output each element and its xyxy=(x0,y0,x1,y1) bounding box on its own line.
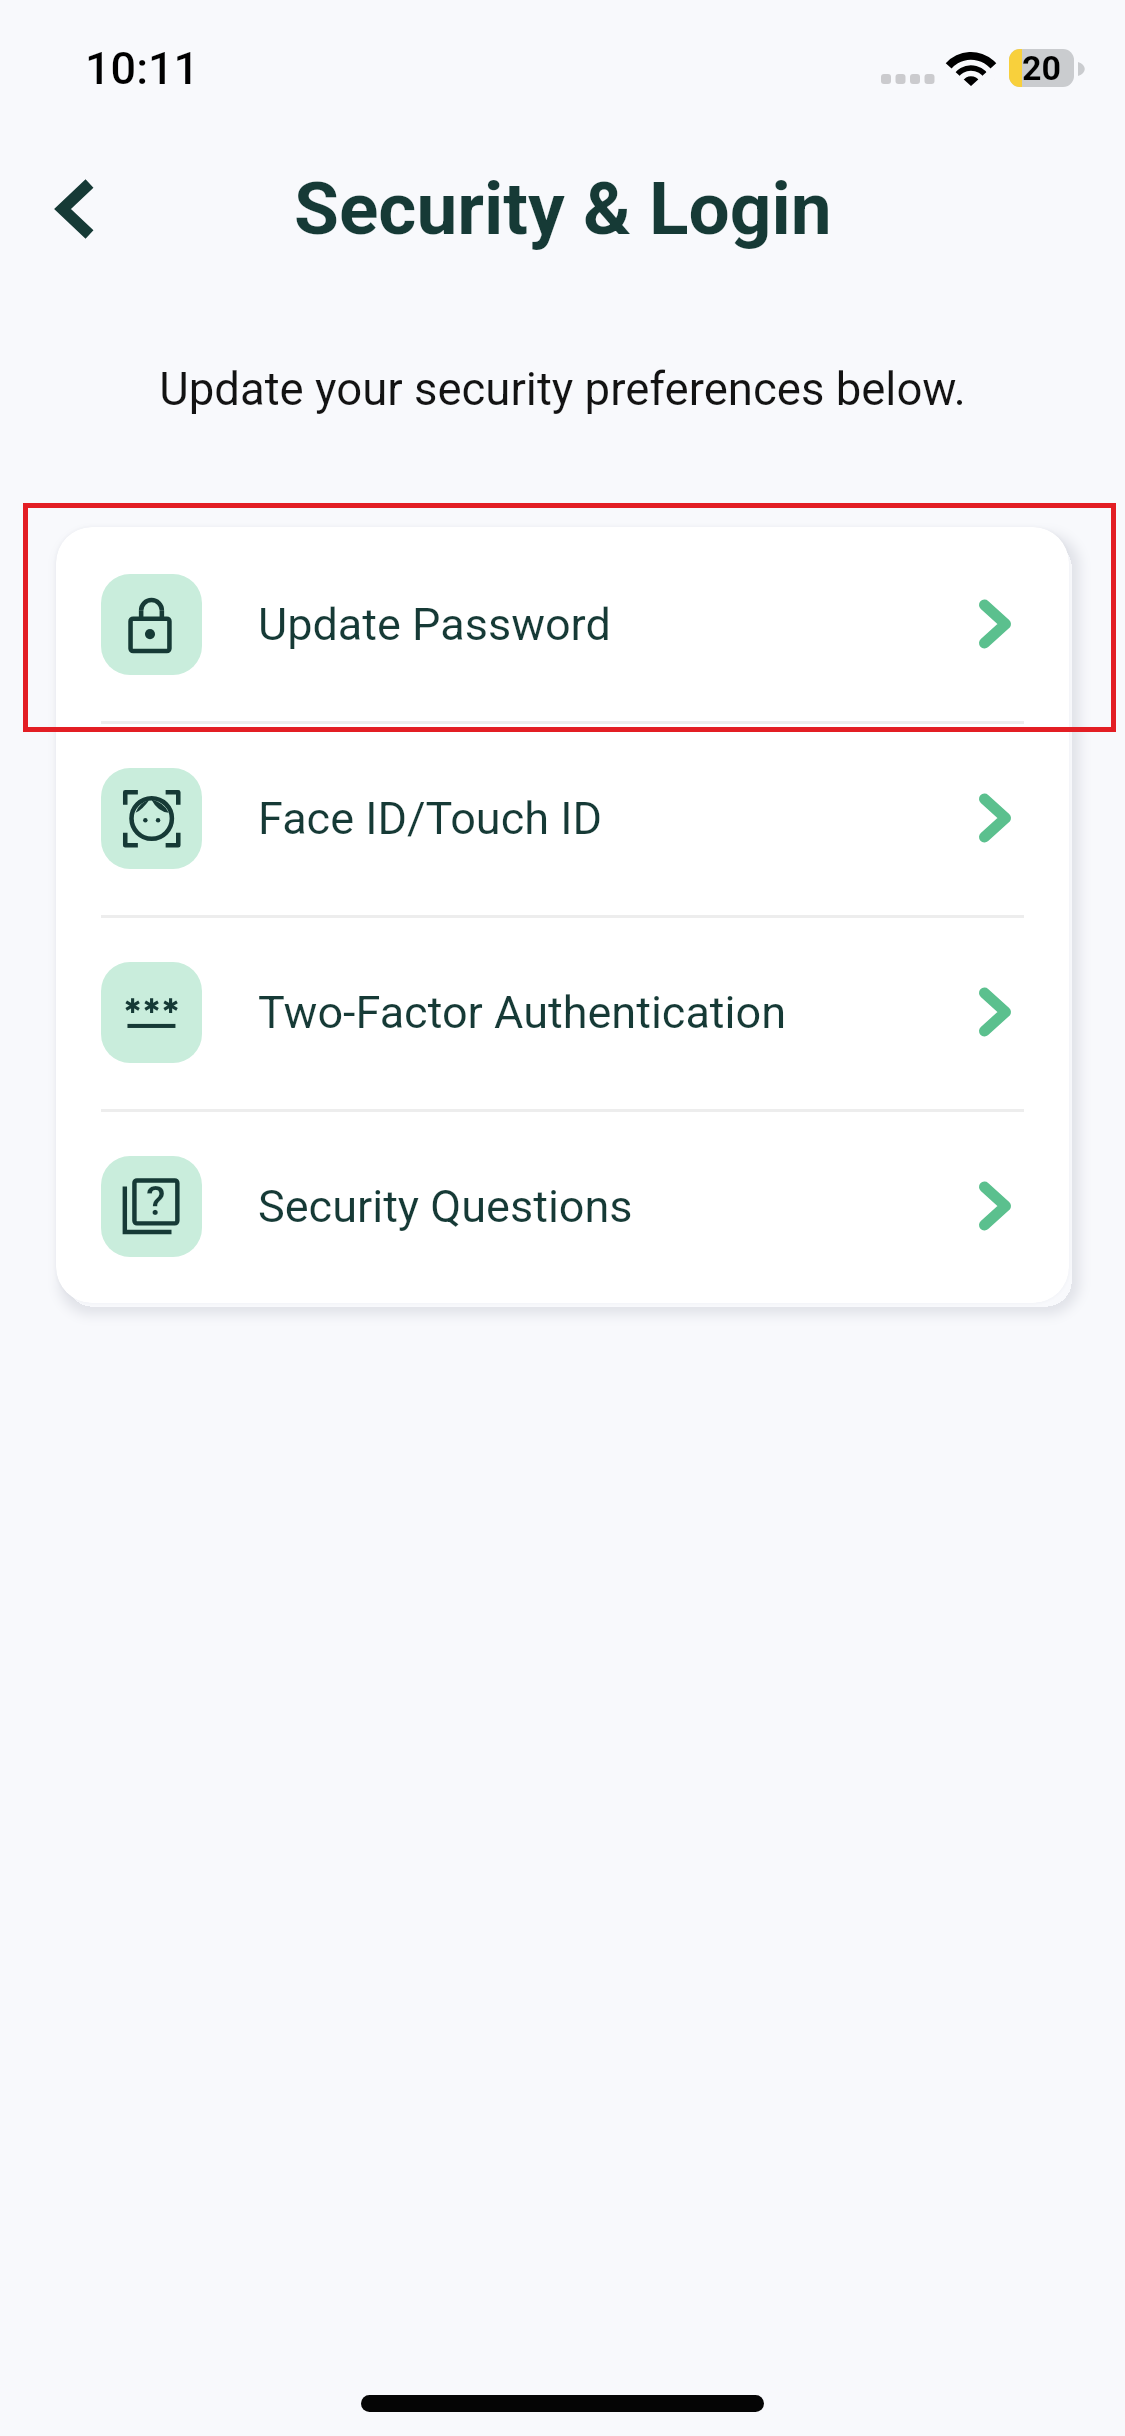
button[interactable]: ? xyxy=(56,1109,1069,1303)
staticText: Security & Login xyxy=(294,166,832,252)
staticText: ? xyxy=(146,1178,166,1225)
staticText: Update your security preferences below. xyxy=(0,363,1125,416)
staticText: Two-Factor Authentication xyxy=(258,986,787,1039)
staticText: Face ID/Touch ID xyxy=(258,792,602,845)
button[interactable]: Face ID/Touch ID xyxy=(56,721,1069,915)
staticText: Update Password xyxy=(258,598,611,651)
button[interactable]: Update Password xyxy=(56,527,1069,721)
button[interactable]: Back xyxy=(30,159,122,259)
staticText: 20 xyxy=(1022,49,1062,86)
staticText: Security Questions xyxy=(258,1180,633,1233)
button[interactable]: Two-Factor Authentication xyxy=(56,915,1069,1109)
staticText: 10:11 xyxy=(85,42,200,95)
